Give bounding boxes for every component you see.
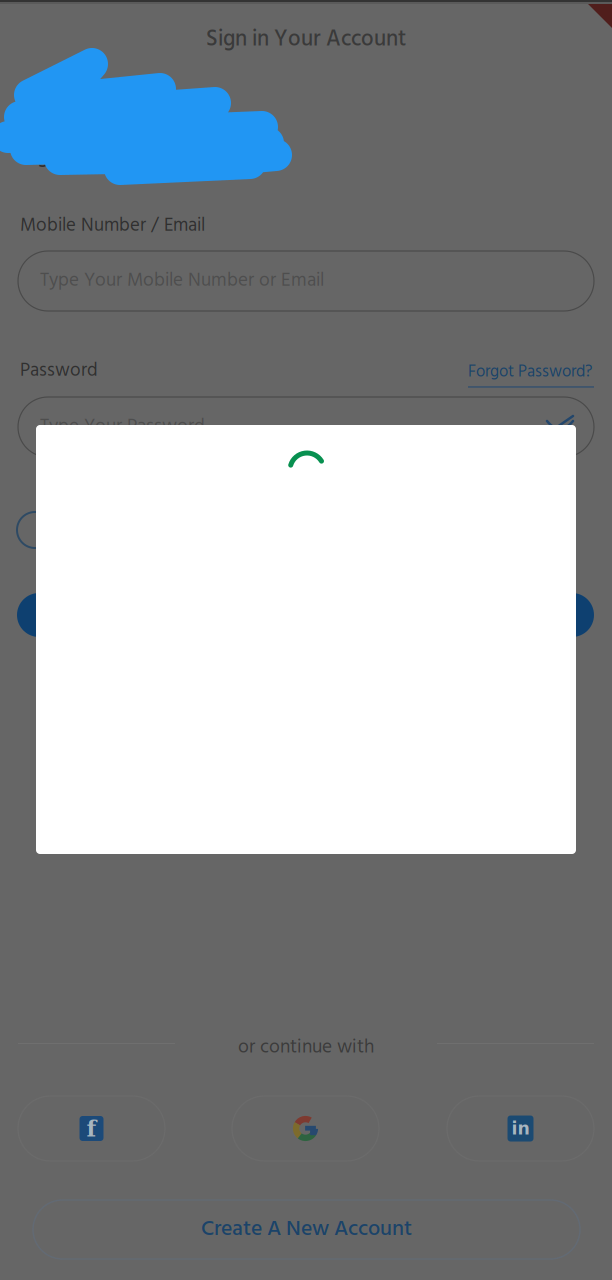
button[interactable]: Create A New Account [33, 1200, 580, 1259]
button[interactable]: Forgot Password? [468, 359, 594, 387]
button[interactable]: Sign in with Facebook [18, 1096, 165, 1161]
staticText: Welcome Back [20, 88, 203, 133]
button[interactable]: Sign in with LinkedIn [447, 1096, 594, 1161]
staticText: Type Your Password [40, 412, 205, 442]
staticText: Sign in Your Account [206, 22, 406, 58]
staticText: or continue with [238, 1032, 374, 1063]
staticText: Mobile Number / Email [20, 211, 205, 241]
staticText: in [511, 1118, 529, 1139]
staticText: Sign in to continue [20, 138, 202, 174]
staticText: Forgot Password? [468, 359, 592, 385]
staticText: Type Your Mobile Number or Email [40, 266, 324, 296]
staticText: f [86, 1115, 96, 1142]
button[interactable]: Sign in with Google [232, 1096, 379, 1161]
button[interactable]: Sign In [17, 593, 594, 637]
staticText: Create A New Account [201, 1212, 412, 1247]
staticText: Password [20, 356, 98, 386]
